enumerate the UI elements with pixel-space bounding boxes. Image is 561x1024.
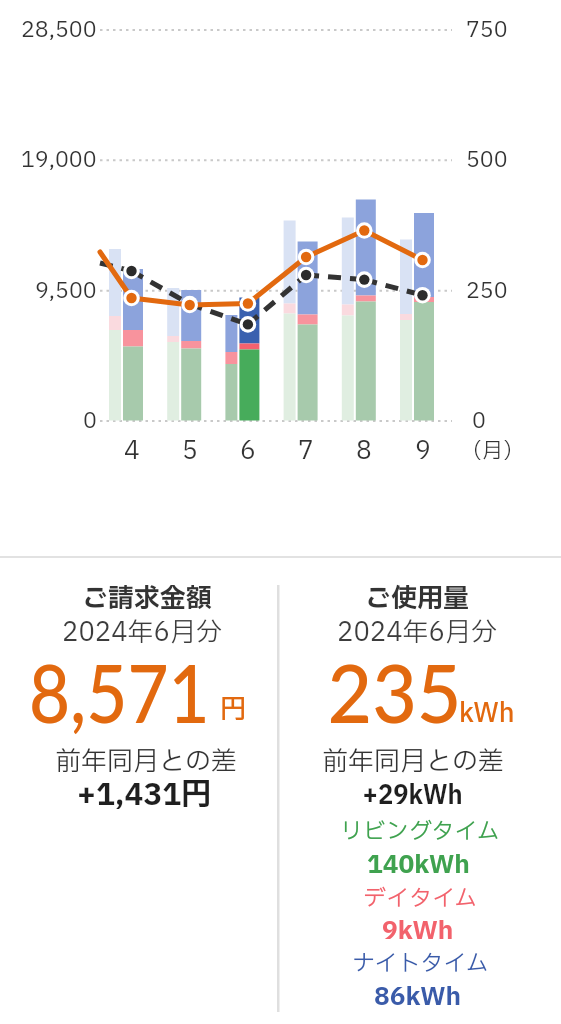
staticText: 2024年6月分 xyxy=(62,613,222,652)
staticText: kWh xyxy=(459,694,515,733)
button[interactable] xyxy=(164,195,208,465)
staticText: 19,000 xyxy=(21,144,97,177)
button[interactable] xyxy=(222,195,266,465)
staticText: 9,500 xyxy=(35,275,97,308)
staticText: ご請求金額 xyxy=(82,579,213,618)
staticText: （月） xyxy=(461,436,524,467)
staticText: 4 xyxy=(124,433,140,470)
staticText: 2024年6月分 xyxy=(337,613,497,652)
staticText: 86kWh xyxy=(374,979,462,1016)
staticText: 750 xyxy=(466,14,508,47)
button[interactable] xyxy=(106,195,150,465)
staticText: 5 xyxy=(182,433,198,470)
button[interactable] xyxy=(0,558,277,1024)
staticText: 7 xyxy=(298,433,314,470)
staticText: 前年同月との差 xyxy=(322,742,505,781)
staticText: 28,500 xyxy=(21,14,97,47)
staticText: 0 xyxy=(472,405,486,438)
staticText: 235 xyxy=(327,643,461,740)
staticText: +29kWh xyxy=(363,775,463,815)
staticText: 9kWh xyxy=(382,913,454,950)
staticText: 8 xyxy=(356,433,372,470)
staticText: 8,571 xyxy=(29,643,210,740)
button[interactable] xyxy=(280,195,324,465)
staticText: 6 xyxy=(240,433,256,470)
button[interactable] xyxy=(280,558,561,1024)
staticText: 前年同月との差 xyxy=(55,742,238,781)
staticText: 140kWh xyxy=(367,847,470,884)
staticText: ご使用量 xyxy=(365,579,470,618)
staticText: ナイトタイム xyxy=(352,947,489,981)
staticText: 250 xyxy=(466,275,508,308)
staticText: 9 xyxy=(415,433,431,470)
button[interactable] xyxy=(338,195,382,465)
staticText: 500 xyxy=(466,144,508,177)
staticText: リビングタイム xyxy=(340,815,500,849)
staticText: +1,431円 xyxy=(77,773,212,818)
button[interactable] xyxy=(397,195,441,465)
staticText: デイタイム xyxy=(363,882,478,916)
staticText: 円 xyxy=(220,690,247,729)
staticText: 0 xyxy=(83,405,97,438)
